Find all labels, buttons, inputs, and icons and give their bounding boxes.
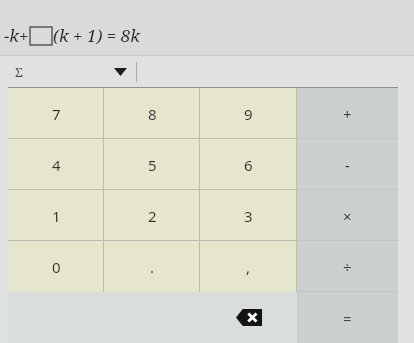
button[interactable]: × xyxy=(297,190,398,241)
staticText: 8 xyxy=(148,104,157,124)
staticText: 5 xyxy=(148,155,157,175)
staticText: 9 xyxy=(244,104,253,124)
button[interactable]: 6 xyxy=(200,139,297,190)
button[interactable]: 8 xyxy=(104,88,200,139)
staticText: = xyxy=(343,308,352,328)
button[interactable]: 9 xyxy=(200,88,297,139)
button[interactable]: Answer box xyxy=(30,27,52,45)
button[interactable]: 0 xyxy=(8,241,104,292)
button[interactable]: 7 xyxy=(8,88,104,139)
staticText: . xyxy=(150,257,155,277)
button[interactable]: 5 xyxy=(104,139,200,190)
button[interactable]: , xyxy=(200,241,297,292)
button[interactable]: - xyxy=(297,139,398,190)
staticText: 1 xyxy=(52,206,61,226)
button[interactable]: Math functions xyxy=(8,61,30,83)
staticText: 3 xyxy=(244,206,253,226)
button[interactable]: = xyxy=(297,292,398,343)
staticText: + xyxy=(343,104,352,124)
staticText: × xyxy=(343,206,352,226)
staticText: 4 xyxy=(52,155,61,175)
staticText: −k+ xyxy=(4,24,29,47)
button[interactable]: 1 xyxy=(8,190,104,241)
button[interactable]: ÷ xyxy=(297,241,398,292)
button[interactable]: 3 xyxy=(200,190,297,241)
button[interactable]: 2 xyxy=(104,190,200,241)
button[interactable]: Backspace xyxy=(200,292,297,343)
staticText: 6 xyxy=(244,155,253,175)
button[interactable]: More options xyxy=(106,58,134,86)
button[interactable]: . xyxy=(104,241,200,292)
button[interactable]: 4 xyxy=(8,139,104,190)
staticText: , xyxy=(246,257,251,277)
staticText: ÷ xyxy=(343,257,352,277)
staticText: 7 xyxy=(52,104,61,124)
staticText: 2 xyxy=(148,206,157,226)
staticText: - xyxy=(345,155,350,175)
button[interactable]: + xyxy=(297,88,398,139)
staticText: 0 xyxy=(52,257,61,277)
staticText: (k + 1) = 8k xyxy=(53,24,140,47)
staticText: Σ xyxy=(15,63,23,81)
